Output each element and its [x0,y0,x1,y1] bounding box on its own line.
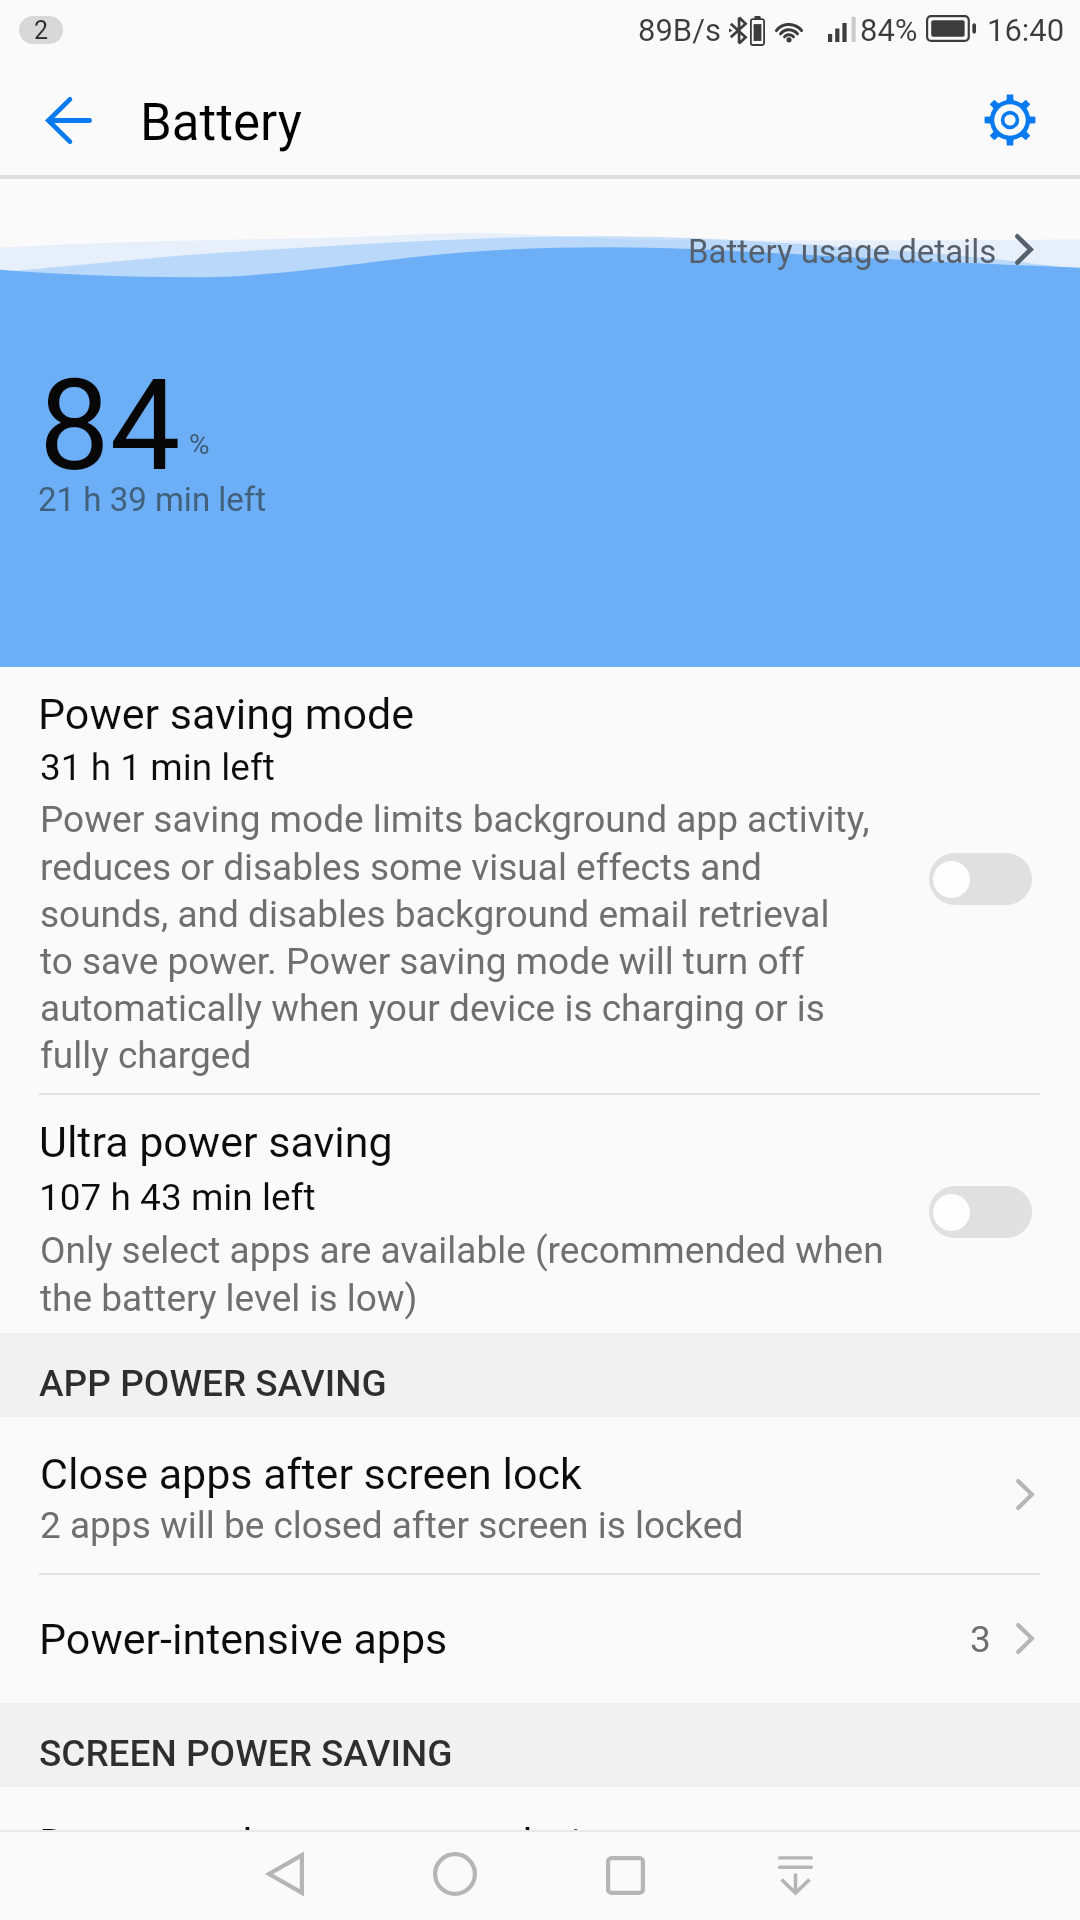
staticText: Close apps after screen lock [40,1449,582,1499]
button[interactable]: Switch [929,853,1032,905]
button[interactable]: Power saving mode [0,667,1080,1093]
staticText: % [189,428,210,461]
button[interactable]: Home [410,1829,500,1919]
staticText: 107 h 43 min left [39,1176,316,1219]
staticText: Power saving mode [38,689,415,739]
staticText: Power-intensive apps [39,1614,448,1664]
button[interactable]: Switch [929,1186,1032,1238]
staticText: 31 h 1 min left [40,746,275,789]
button[interactable]: Ultra power saving [0,1095,1080,1333]
staticText: SCREEN POWER SAVING [39,1732,453,1775]
staticText: 16:40 [987,12,1065,48]
staticText: Ultra power saving [39,1117,393,1167]
staticText: 2 apps will be closed after screen is lo… [40,1504,744,1547]
button[interactable]: Power-intensive apps [0,1575,1080,1703]
staticText: 21 h 39 min left [38,480,267,519]
button[interactable]: Back [26,77,112,163]
staticText: Battery [140,93,302,153]
staticText: 2 [34,16,49,44]
button[interactable]: Notifications [750,1830,840,1920]
button[interactable]: Settings [967,77,1053,163]
button[interactable]: Decrease the screen resolution [0,1787,1080,1830]
button[interactable]: Back [240,1829,330,1919]
staticText: 89B/s [638,12,721,48]
staticText: 84 [39,352,181,500]
button[interactable]: Battery usage details [676,219,1044,277]
button[interactable]: Recent apps [580,1830,670,1920]
button[interactable]: Close apps after screen lock [0,1417,1080,1573]
staticText: Only select apps are available (recommen… [40,1229,884,1320]
staticText: 84% [860,12,918,48]
staticText: 3 [970,1618,991,1661]
staticText: Battery usage details [688,232,997,271]
staticText: Power saving mode limits background app … [40,798,870,1077]
staticText: APP POWER SAVING [39,1362,387,1405]
staticText: Decrease the screen resolution [39,1819,630,1862]
